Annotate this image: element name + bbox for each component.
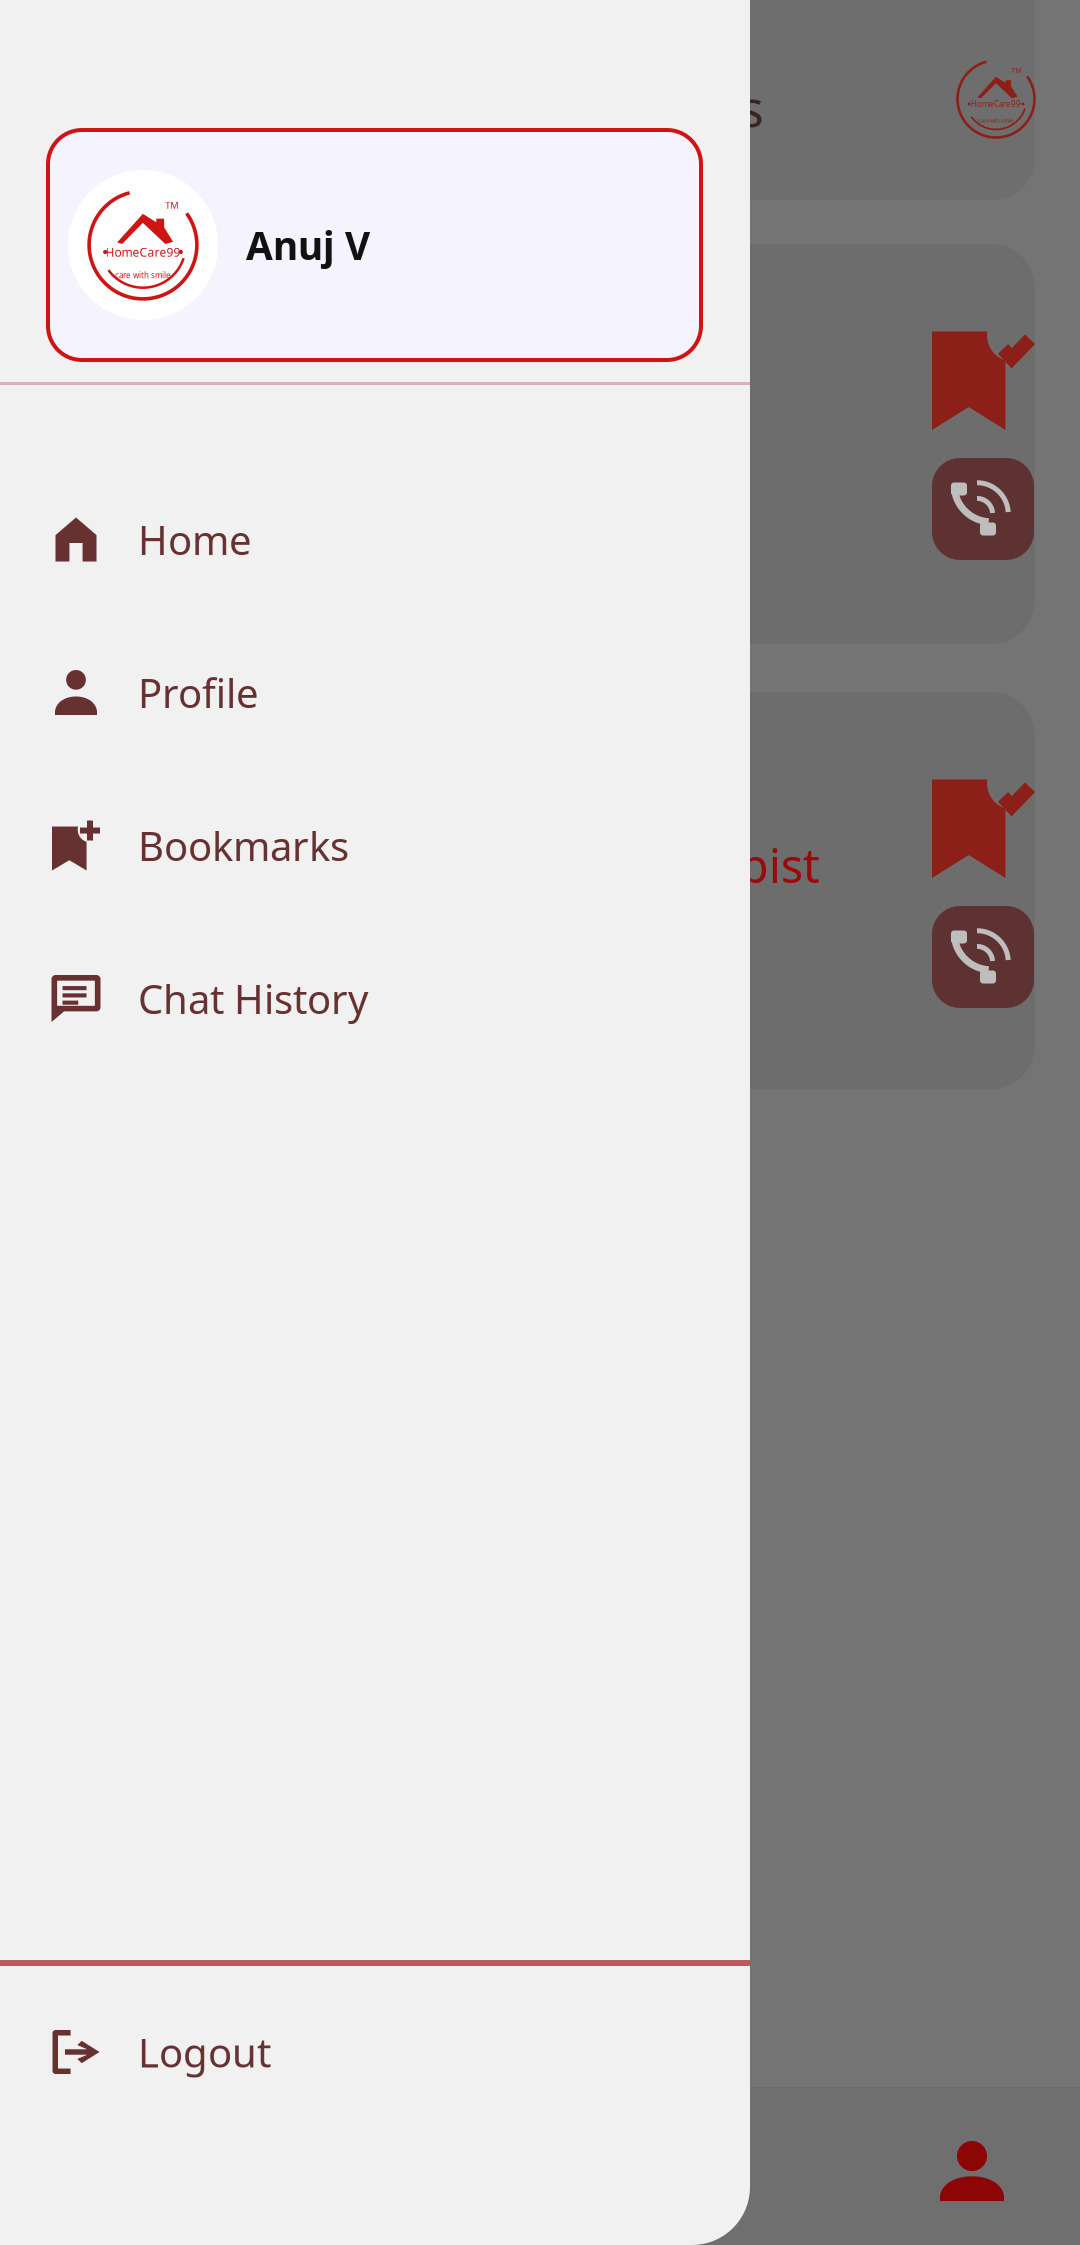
staticText: Profile [138, 666, 259, 719]
button[interactable]: HomeCare99 [48, 130, 701, 360]
button[interactable]: Profile tab [922, 2123, 1022, 2219]
button[interactable]: Home [0, 463, 750, 616]
staticText: HomeCare99 [105, 244, 180, 260]
staticText: Home [138, 513, 252, 566]
staticText: TM [1011, 66, 1021, 75]
staticText: Chat History [138, 972, 368, 1025]
button[interactable]: Bookmarks [0, 769, 750, 922]
staticText: care with smile [115, 270, 171, 280]
staticText: Physiotherapist [481, 834, 820, 896]
button[interactable]: Chat History [0, 922, 750, 1075]
staticText: Our Services [473, 75, 764, 140]
staticText: care with smile [978, 117, 1014, 124]
button[interactable]: Call [932, 906, 1034, 1008]
button[interactable]: Logout [0, 2020, 750, 2084]
staticText: TM [165, 199, 178, 211]
button[interactable]: Call [932, 458, 1034, 560]
staticText: Logout [138, 2025, 271, 2078]
staticText: Anuj V [246, 219, 370, 271]
button[interactable]: Profile [0, 616, 750, 769]
staticText: Physiotherapist [481, 818, 820, 880]
staticText: HomeCare99 [971, 99, 1021, 109]
staticText: Bookmarks [138, 819, 349, 872]
